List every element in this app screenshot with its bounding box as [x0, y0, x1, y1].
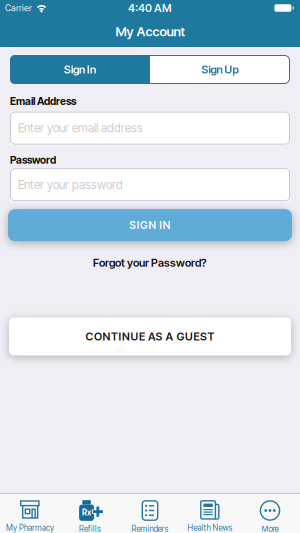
staticText: Health News: [187, 523, 232, 533]
button[interactable]: Sign Up: [150, 55, 290, 84]
staticText: SIGN IN: [129, 219, 171, 232]
staticText: 4:40 AM: [128, 1, 172, 15]
staticText: Refills: [79, 524, 101, 533]
button[interactable]: Reminders: [120, 494, 180, 533]
staticText: Sign Up: [201, 63, 238, 76]
button[interactable]: Health News: [180, 494, 240, 533]
button[interactable]: More: [240, 494, 300, 533]
staticText: Reminders: [131, 524, 168, 533]
button[interactable]: CONTINUE AS A GUEST: [0, 317, 300, 355]
button[interactable]: Enter your email address: [0, 112, 300, 145]
staticText: Forgot your Password?: [93, 256, 207, 269]
button[interactable]: My Pharmacy: [0, 494, 60, 533]
button[interactable]: Forgot your Password?: [93, 256, 207, 269]
staticText: Enter your email address: [18, 121, 143, 135]
staticText: My Pharmacy: [6, 523, 54, 533]
staticText: Email Address: [10, 95, 76, 108]
staticText: Enter your password: [18, 178, 123, 192]
staticText: Carrier: [5, 3, 32, 13]
button[interactable]: SIGN IN: [0, 209, 300, 241]
staticText: Password: [10, 154, 56, 166]
staticText: More: [261, 524, 278, 533]
button[interactable]: Enter your password: [0, 168, 300, 201]
staticText: CONTINUE AS A GUEST: [85, 330, 214, 343]
staticText: Rx: [82, 508, 91, 517]
button[interactable]: Rx: [60, 494, 120, 533]
staticText: My Account: [115, 24, 184, 39]
staticText: Sign In: [64, 63, 96, 76]
button[interactable]: Sign In: [10, 55, 150, 84]
